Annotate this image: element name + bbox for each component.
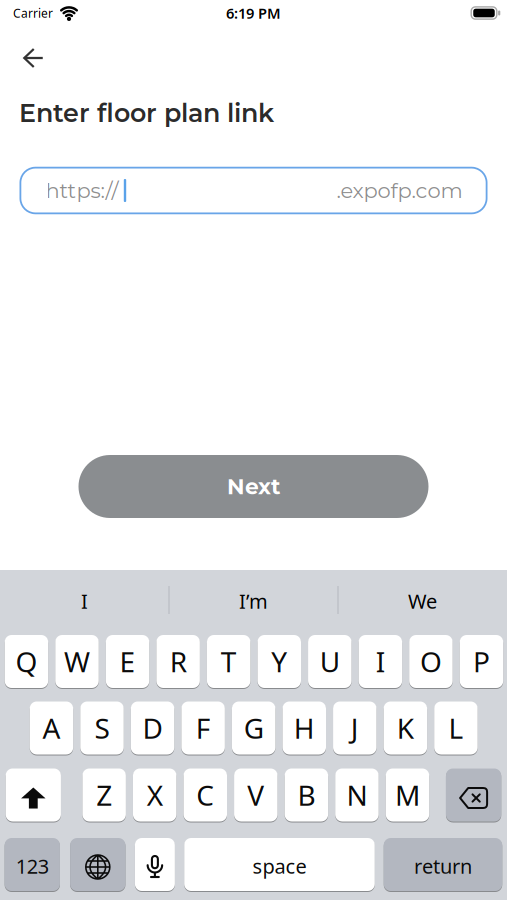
button[interactable]: K xyxy=(384,701,427,755)
staticText: U xyxy=(320,643,340,680)
button[interactable]: I xyxy=(4,573,164,629)
staticText: Enter floor plan link xyxy=(19,98,274,128)
staticText: Z xyxy=(96,776,112,814)
button[interactable]: O xyxy=(409,634,453,688)
button[interactable]: M xyxy=(386,768,429,822)
staticText: Q xyxy=(15,643,37,680)
staticText: J xyxy=(351,709,359,747)
staticText: F xyxy=(196,709,211,747)
staticText: R xyxy=(170,643,187,680)
staticText: M xyxy=(395,776,420,814)
staticText: I xyxy=(376,643,385,680)
staticText: 6:19 PM xyxy=(226,3,281,23)
staticText: space xyxy=(252,853,306,879)
staticText: S xyxy=(94,709,109,747)
staticText: Carrier xyxy=(13,5,53,21)
staticText: return xyxy=(414,853,472,879)
button[interactable]: H xyxy=(282,701,326,755)
button[interactable]: R xyxy=(156,634,200,688)
staticText: P xyxy=(473,643,490,680)
button[interactable]: Shift xyxy=(6,768,61,822)
staticText: .expofp.com xyxy=(336,178,462,203)
button[interactable]: Next xyxy=(78,455,428,518)
staticText: N xyxy=(346,776,367,814)
button[interactable]: Back xyxy=(11,36,55,80)
button[interactable]: Next keyboard xyxy=(70,837,125,891)
button[interactable]: A xyxy=(30,701,73,755)
button[interactable]: B xyxy=(285,768,328,822)
button[interactable]: D xyxy=(131,701,174,755)
button[interactable]: T xyxy=(207,634,250,688)
button[interactable]: U xyxy=(308,634,352,688)
staticText: I’m xyxy=(239,588,268,614)
staticText: 123 xyxy=(16,853,49,879)
staticText: H xyxy=(294,709,315,747)
button[interactable]: P xyxy=(460,634,503,688)
staticText: https:// xyxy=(45,178,118,203)
button[interactable]: V xyxy=(234,768,278,822)
staticText: T xyxy=(221,643,237,680)
button[interactable]: space xyxy=(184,837,375,891)
button[interactable]: C xyxy=(183,768,227,822)
button[interactable]: J xyxy=(333,701,377,755)
staticText: Y xyxy=(271,643,287,680)
staticText: W xyxy=(64,643,90,680)
button[interactable]: We xyxy=(342,573,502,629)
staticText: C xyxy=(196,776,214,814)
button[interactable]: L xyxy=(434,701,478,755)
button[interactable]: Floor plan link xyxy=(19,167,487,214)
button[interactable]: Z xyxy=(82,768,126,822)
button[interactable]: return xyxy=(384,837,502,891)
button[interactable]: I xyxy=(359,634,402,688)
staticText: We xyxy=(408,588,437,614)
staticText: O xyxy=(420,643,442,680)
staticText: E xyxy=(120,643,136,680)
button[interactable]: N xyxy=(335,768,379,822)
staticText: I xyxy=(81,588,88,614)
button[interactable]: 123 xyxy=(5,837,60,891)
staticText: Next xyxy=(227,473,280,500)
button[interactable]: S xyxy=(80,701,124,755)
button[interactable]: I’m xyxy=(173,573,333,629)
staticText: X xyxy=(147,776,163,814)
button[interactable]: G xyxy=(232,701,275,755)
button[interactable]: Delete xyxy=(446,768,501,822)
button[interactable]: F xyxy=(181,701,225,755)
staticText: B xyxy=(297,776,315,814)
staticText: D xyxy=(143,709,163,747)
button[interactable]: X xyxy=(133,768,176,822)
staticText: V xyxy=(247,776,264,814)
button[interactable]: Q xyxy=(5,634,48,688)
button[interactable]: W xyxy=(55,634,99,688)
button[interactable]: Dictate xyxy=(135,837,175,891)
staticText: K xyxy=(397,709,414,747)
staticText: G xyxy=(244,709,264,747)
staticText: A xyxy=(42,709,60,747)
staticText: L xyxy=(448,709,463,747)
button[interactable]: E xyxy=(106,634,149,688)
button[interactable]: Y xyxy=(257,634,301,688)
